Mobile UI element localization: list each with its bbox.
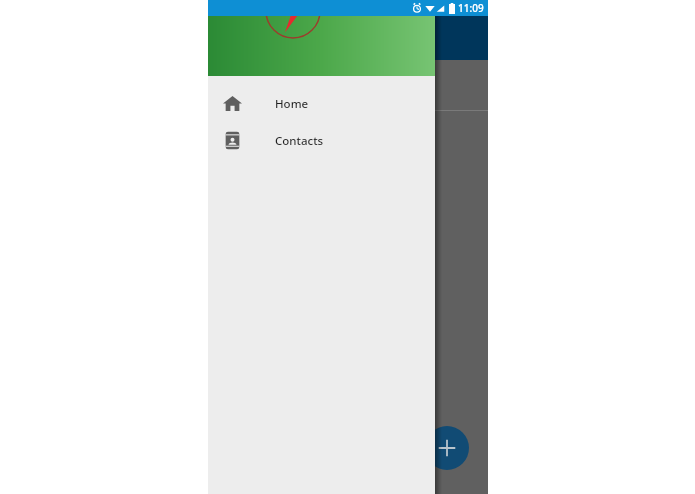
button[interactable]: Add — [425, 426, 469, 470]
staticText: Contacts — [275, 133, 324, 149]
button[interactable]: Contacts — [208, 122, 435, 159]
button[interactable]: Home — [208, 85, 435, 122]
staticText: 11:09 — [458, 1, 484, 15]
staticText: Home — [275, 96, 309, 112]
